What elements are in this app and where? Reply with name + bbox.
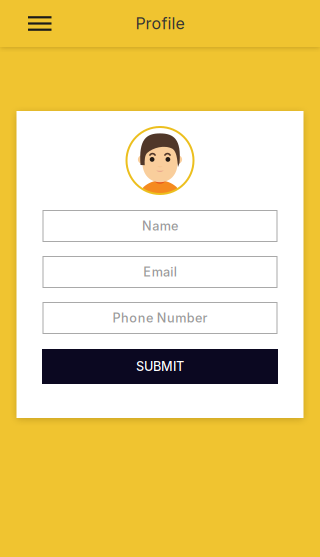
button[interactable]: Email xyxy=(42,256,277,288)
staticText: Profile xyxy=(135,14,184,33)
staticText: Name xyxy=(142,218,178,234)
staticText: Email xyxy=(143,264,177,280)
staticText: SUBMIT xyxy=(136,359,184,374)
button[interactable]: Name xyxy=(42,210,277,242)
button[interactable]: SUBMIT xyxy=(42,349,278,384)
button[interactable]: Menu xyxy=(0,6,61,41)
button[interactable]: Phone Number xyxy=(42,302,277,334)
staticText: Phone Number xyxy=(113,310,207,326)
